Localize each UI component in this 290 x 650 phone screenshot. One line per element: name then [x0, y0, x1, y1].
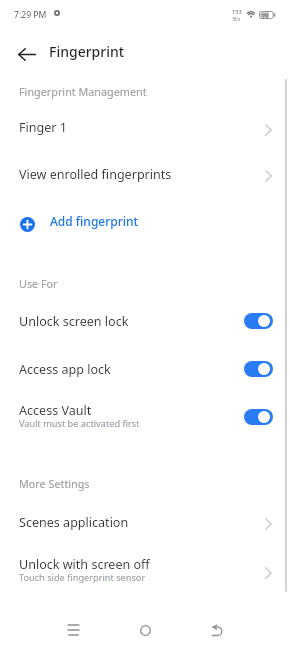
- staticText: B/s: [233, 16, 241, 23]
- staticText: 7:29 PM: [14, 9, 47, 21]
- staticText: Finger 1: [19, 119, 67, 136]
- button[interactable]: Home: [125, 610, 165, 650]
- staticText: Access app lock: [19, 361, 111, 378]
- button[interactable]: Scenes application: [0, 499, 290, 545]
- staticText: Vault must be activated first: [19, 417, 140, 430]
- staticText: Use For: [19, 276, 58, 291]
- button[interactable]: Recent apps: [53, 610, 93, 650]
- button[interactable]: Add fingerprint: [0, 198, 290, 244]
- staticText: Fingerprint Management: [19, 84, 147, 99]
- button[interactable]: Unlock with screen off: [0, 548, 290, 594]
- staticText: More Settings: [19, 476, 90, 491]
- staticText: Touch side fingerprint sensor: [19, 571, 146, 584]
- button[interactable]: Access app lock: [0, 346, 290, 392]
- button[interactable]: Finger 1: [0, 105, 290, 150]
- button[interactable]: Unlock screen lock: [0, 298, 290, 344]
- staticText: 153: [232, 8, 242, 16]
- button[interactable]: Access Vault: [0, 394, 290, 440]
- staticText: Add fingerprint: [50, 213, 139, 229]
- staticText: Unlock screen lock: [19, 313, 129, 330]
- button[interactable]: Back: [197, 610, 237, 650]
- staticText: Access Vault: [19, 402, 92, 419]
- staticText: 79: [262, 12, 269, 20]
- staticText: Scenes application: [19, 514, 129, 531]
- button[interactable]: View enrolled fingerprints: [0, 151, 290, 197]
- staticText: Unlock with screen off: [19, 556, 150, 573]
- staticText: Fingerprint: [49, 42, 125, 61]
- button[interactable]: Back: [9, 37, 43, 71]
- staticText: View enrolled fingerprints: [19, 166, 172, 183]
